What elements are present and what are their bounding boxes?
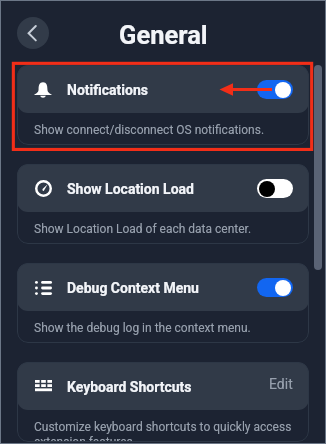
button[interactable]: Notifications [17, 65, 309, 113]
staticText: Notifications [67, 82, 257, 98]
button[interactable]: Toggle [257, 80, 293, 99]
button[interactable]: Keyboard Shortcuts [17, 362, 309, 410]
button[interactable]: Back [17, 17, 49, 49]
staticText: Show Location Load [67, 181, 257, 197]
staticText: Show connect/disconnect OS notifications… [34, 123, 265, 137]
button[interactable]: Debug Context Menu [17, 263, 309, 311]
button[interactable]: Toggle [257, 278, 293, 297]
staticText: Debug Context Menu [67, 280, 257, 296]
button[interactable]: Edit [269, 376, 293, 392]
staticText: General [119, 20, 208, 50]
staticText: Show Location Load of each data center. [34, 222, 252, 236]
staticText: Keyboard Shortcuts [67, 379, 269, 395]
button[interactable]: Show Location Load [17, 164, 309, 212]
staticText: Customize keyboard shortcuts to quickly … [34, 420, 299, 442]
button[interactable]: Toggle [257, 179, 293, 198]
staticText: Show the debug log in the context menu. [34, 321, 251, 335]
